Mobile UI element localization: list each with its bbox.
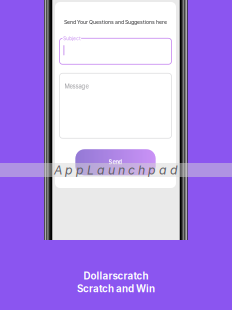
staticText: Subject — [63, 36, 80, 41]
button[interactable]: Send — [75, 149, 155, 175]
button[interactable]: Subject — [59, 38, 171, 64]
staticText: Dollarscratch — [83, 270, 148, 282]
staticText: Send — [108, 159, 122, 166]
button[interactable]: Message — [59, 73, 171, 138]
staticText: A p p L a u n c h p a d — [54, 163, 178, 177]
staticText: Scratch and Win — [77, 283, 155, 295]
staticText: Message — [64, 83, 88, 90]
staticText: Send Your Questions and Suggestions here — [64, 19, 167, 25]
